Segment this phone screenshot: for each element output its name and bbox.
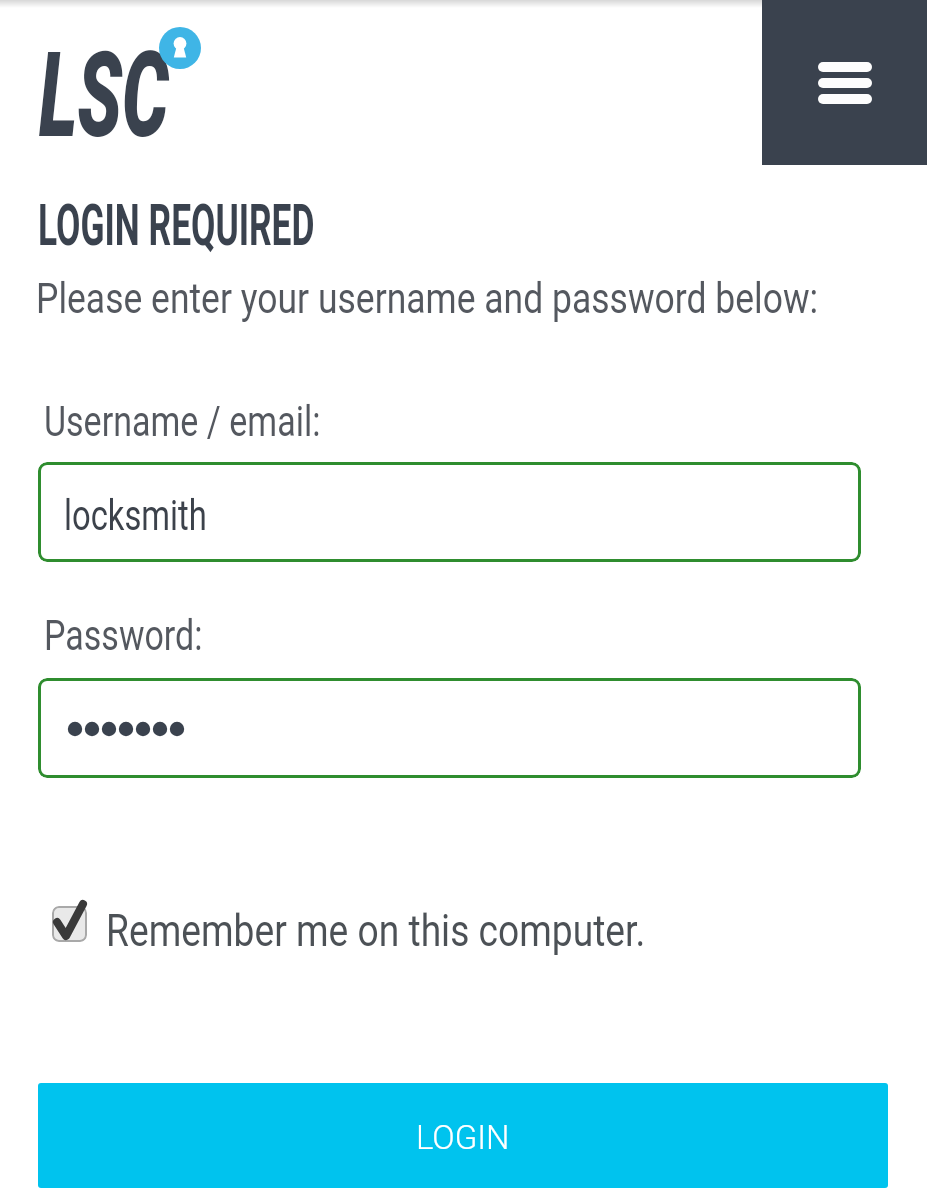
staticText: Username / email: xyxy=(44,397,321,446)
staticText: Password: xyxy=(44,611,203,660)
staticText: LSC xyxy=(39,26,169,165)
staticText: Please enter your username and password … xyxy=(36,274,818,323)
button[interactable] xyxy=(38,678,861,778)
button[interactable] xyxy=(38,462,861,562)
button[interactable]: LOGIN xyxy=(38,1083,888,1188)
staticText: LOGIN xyxy=(416,1118,510,1157)
button[interactable] xyxy=(762,0,927,165)
staticText: LOGIN REQUIRED xyxy=(38,192,314,259)
button[interactable] xyxy=(44,895,644,955)
staticText: Remember me on this computer. xyxy=(106,905,646,957)
staticText: locksmith xyxy=(64,491,207,540)
